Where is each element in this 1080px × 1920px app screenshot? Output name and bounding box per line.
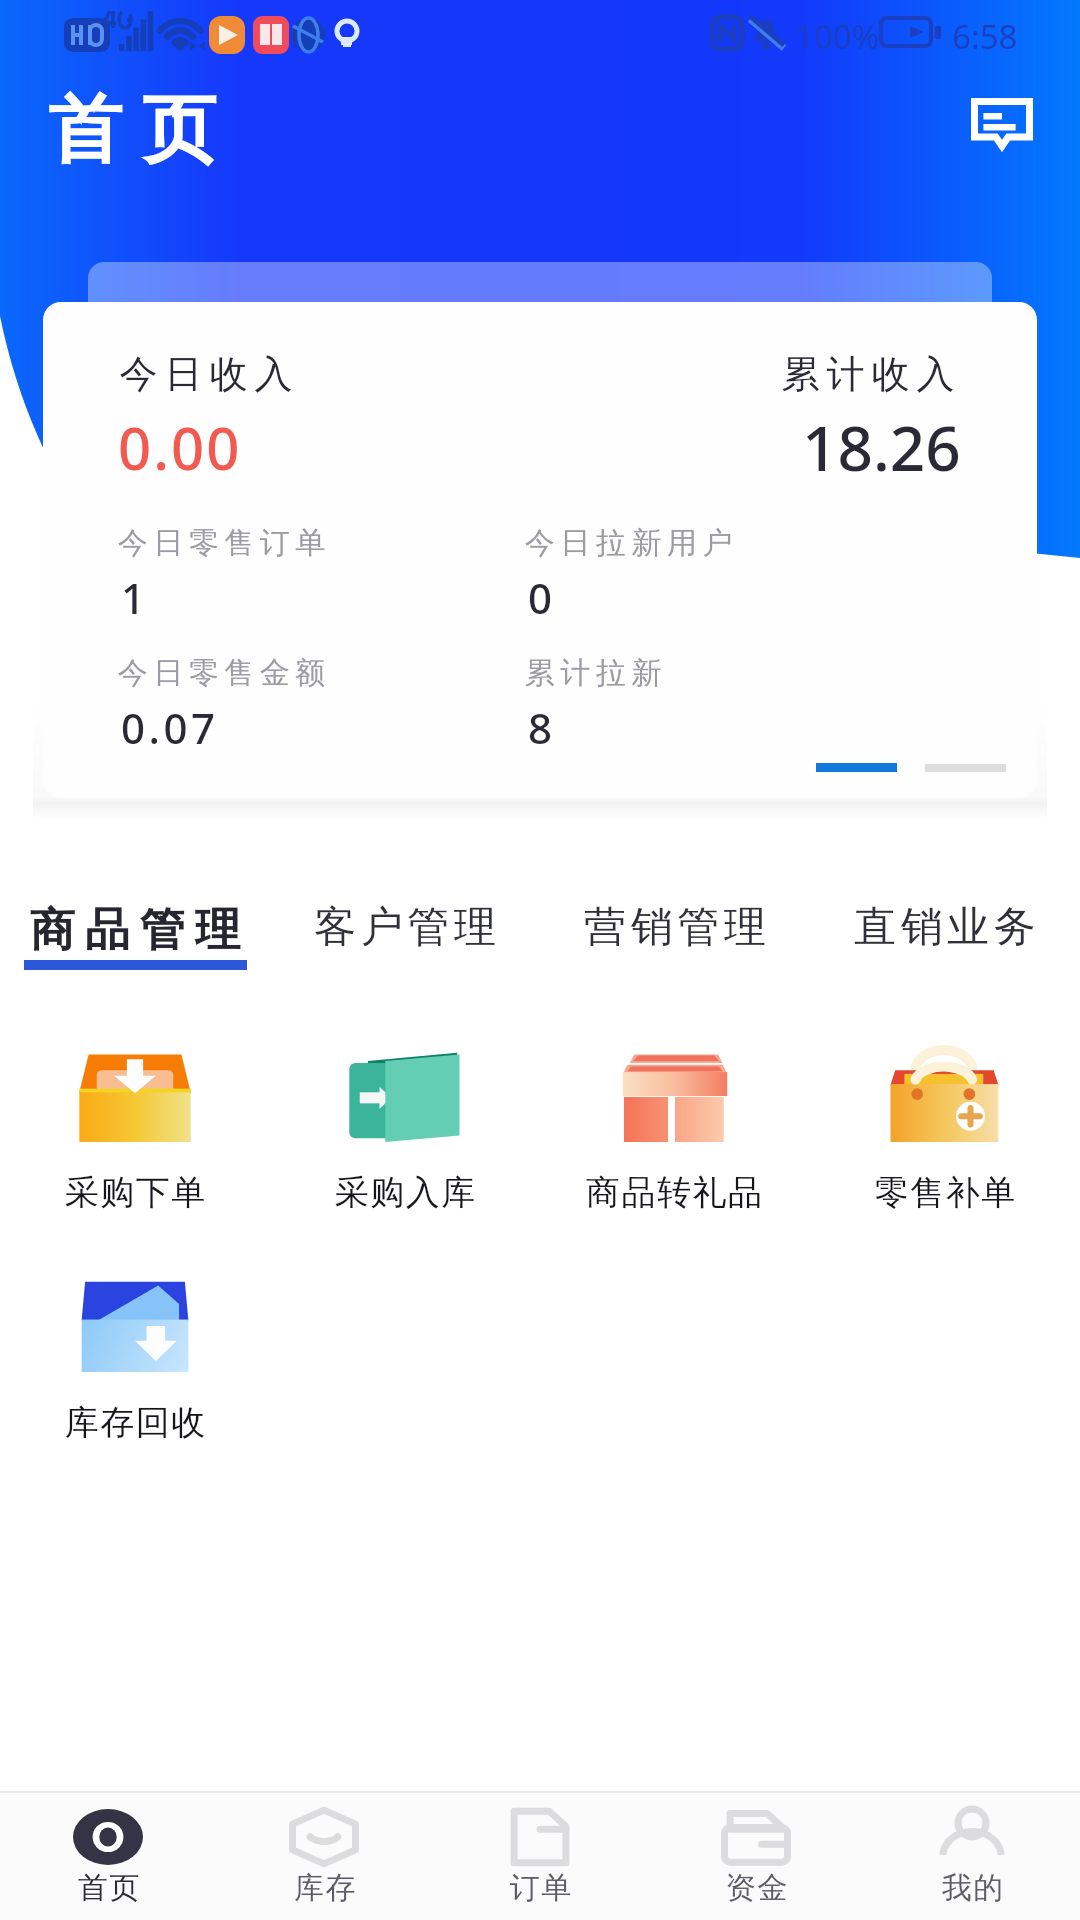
button[interactable]: Messages bbox=[950, 80, 1054, 166]
button[interactable]: 采购下单 bbox=[0, 1044, 270, 1234]
button[interactable]: 直销业务 bbox=[810, 890, 1080, 980]
staticText: 今日收入 bbox=[116, 350, 296, 398]
button[interactable]: 库存回收 bbox=[0, 1274, 270, 1464]
staticText: 库存回收 bbox=[64, 1401, 206, 1444]
staticText: 0.07 bbox=[121, 699, 219, 756]
button[interactable]: 营销管理 bbox=[540, 890, 810, 980]
button[interactable]: 商品转礼品 bbox=[540, 1044, 810, 1234]
staticText: 商品管理 bbox=[25, 902, 245, 959]
staticText: 100% bbox=[795, 14, 880, 59]
staticText: 8 bbox=[528, 699, 556, 756]
staticText: 商品转礼品 bbox=[586, 1171, 764, 1214]
button[interactable]: 商品管理 bbox=[0, 890, 270, 980]
staticText: 营销管理 bbox=[582, 901, 768, 954]
staticText: 1 bbox=[121, 569, 149, 626]
staticText: 累计拉新 bbox=[522, 654, 664, 692]
staticText: 库存 bbox=[293, 1869, 356, 1907]
staticText: 首页 bbox=[77, 1869, 140, 1907]
button[interactable]: 资金 bbox=[648, 1793, 864, 1920]
button[interactable]: 零售补单 bbox=[810, 1044, 1080, 1234]
staticText: 采购下单 bbox=[64, 1171, 206, 1214]
staticText: 今日零售订单 bbox=[115, 524, 328, 562]
button[interactable]: 库存 bbox=[216, 1793, 432, 1920]
staticText: 直销业务 bbox=[852, 901, 1038, 954]
button[interactable]: 客户管理 bbox=[270, 890, 540, 980]
staticText: 6:58 bbox=[952, 14, 1018, 59]
button[interactable]: 今日收入 bbox=[43, 302, 1037, 798]
staticText: 今日拉新用户 bbox=[522, 524, 735, 562]
button[interactable]: 我的 bbox=[864, 1793, 1080, 1920]
staticText: 采购入库 bbox=[334, 1171, 476, 1214]
staticText: 我的 bbox=[941, 1869, 1004, 1907]
staticText: 零售补单 bbox=[874, 1171, 1016, 1214]
staticText: 累计收入 bbox=[778, 350, 958, 398]
button[interactable]: 首页 bbox=[0, 1793, 216, 1920]
staticText: 资金 bbox=[725, 1869, 788, 1907]
staticText: 0 bbox=[528, 569, 556, 626]
button[interactable]: 订单 bbox=[432, 1793, 648, 1920]
staticText: 18.26 bbox=[802, 405, 961, 489]
button[interactable]: 采购入库 bbox=[270, 1044, 540, 1234]
staticText: 订单 bbox=[509, 1869, 572, 1907]
staticText: 0.00 bbox=[118, 408, 242, 487]
staticText: 今日零售金额 bbox=[115, 654, 328, 692]
staticText: 首页 bbox=[38, 84, 226, 177]
staticText: 客户管理 bbox=[312, 901, 498, 954]
